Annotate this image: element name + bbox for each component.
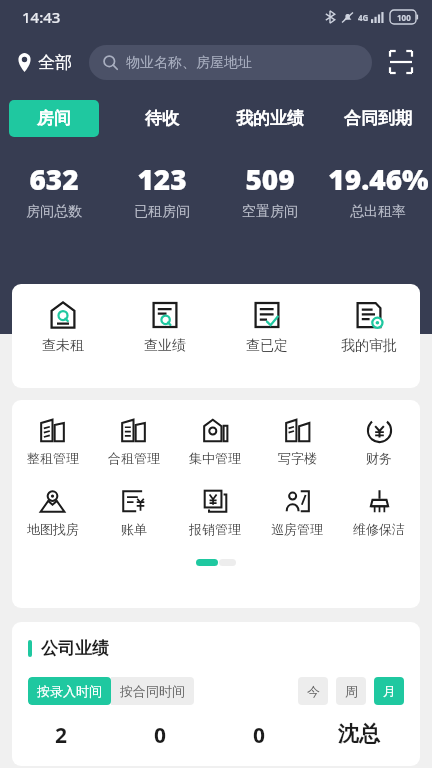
staticText: 空置房间 xyxy=(242,203,298,221)
staticText: 我的业绩 xyxy=(236,108,304,129)
staticText: 查已定 xyxy=(246,337,288,355)
staticText: 房间 xyxy=(37,108,71,129)
staticText: 巡房管理 xyxy=(271,521,323,537)
staticText: 0 xyxy=(253,721,266,750)
button[interactable]: 19.46% xyxy=(324,160,432,221)
staticText: 今 xyxy=(307,683,320,699)
staticText: 合租管理 xyxy=(108,450,160,466)
button[interactable]: 今 xyxy=(298,677,328,705)
staticText: 查业绩 xyxy=(144,337,186,355)
button[interactable]: 巡房管理 xyxy=(256,488,338,537)
staticText: 查未租 xyxy=(42,337,84,355)
button[interactable]: 待收 xyxy=(135,102,189,135)
staticText: 公司业绩 xyxy=(41,638,109,659)
staticText: 我的审批 xyxy=(341,337,397,355)
staticText: 4G xyxy=(358,12,369,23)
staticText: 写字楼 xyxy=(278,450,317,466)
button[interactable]: 财务 xyxy=(338,417,420,466)
staticText: 月 xyxy=(383,683,396,699)
button[interactable]: 按合同时间 xyxy=(111,677,194,705)
staticText: 财务 xyxy=(366,450,392,466)
button[interactable]: 合同到期 xyxy=(334,102,422,135)
staticText: 0 xyxy=(154,721,167,750)
staticText: 19.46% xyxy=(328,160,429,198)
staticText: 按录入时间 xyxy=(37,683,102,699)
staticText: 集中管理 xyxy=(189,450,241,466)
button[interactable]: 周 xyxy=(336,677,366,705)
button[interactable]: 写字楼 xyxy=(256,417,338,466)
staticText: 整租管理 xyxy=(27,450,79,466)
staticText: 沈总 xyxy=(338,721,380,747)
staticText: 632 xyxy=(29,160,79,198)
staticText: 509 xyxy=(245,160,295,198)
button[interactable]: 月 xyxy=(374,677,404,705)
button[interactable]: 509 xyxy=(216,160,324,221)
button[interactable]: 地图找房 xyxy=(12,488,93,537)
staticText: 维修保洁 xyxy=(353,521,405,537)
staticText: 100 xyxy=(397,12,411,23)
button[interactable]: 查未租 xyxy=(12,300,114,355)
button[interactable]: 我的审批 xyxy=(318,300,420,355)
staticText: 全部 xyxy=(38,52,72,73)
button[interactable]: 按录入时间 xyxy=(28,677,111,705)
staticText: 合同到期 xyxy=(344,108,412,129)
button[interactable]: Scan xyxy=(384,45,418,79)
button[interactable]: 123 xyxy=(108,160,216,221)
staticText: 123 xyxy=(137,160,187,198)
staticText: 房间总数 xyxy=(26,203,82,221)
button[interactable]: 账单 xyxy=(93,488,174,537)
button[interactable]: 合租管理 xyxy=(93,417,174,466)
staticText: 已租房间 xyxy=(134,203,190,221)
staticText: 周 xyxy=(345,683,358,699)
staticText: 14:43 xyxy=(22,7,61,27)
button[interactable]: 全部 xyxy=(14,48,75,77)
button[interactable]: 维修保洁 xyxy=(338,488,420,537)
staticText: 2 xyxy=(55,721,68,750)
staticText: 按合同时间 xyxy=(120,683,185,699)
staticText: 地图找房 xyxy=(27,521,79,537)
staticText: 账单 xyxy=(121,521,147,537)
staticText: 待收 xyxy=(145,108,179,129)
button[interactable]: 查已定 xyxy=(216,300,318,355)
button[interactable]: 集中管理 xyxy=(174,417,256,466)
button[interactable]: 物业名称、房屋地址 xyxy=(89,45,372,80)
staticText: 物业名称、房屋地址 xyxy=(126,54,252,72)
staticText: 总出租率 xyxy=(350,203,406,221)
staticText: 报销管理 xyxy=(189,521,241,537)
button[interactable]: 整租管理 xyxy=(12,417,93,466)
button[interactable]: 房间 xyxy=(9,100,99,137)
button[interactable]: 632 xyxy=(0,160,108,221)
button[interactable]: 报销管理 xyxy=(174,488,256,537)
button[interactable]: 我的业绩 xyxy=(226,102,314,135)
button[interactable]: 查业绩 xyxy=(114,300,216,355)
